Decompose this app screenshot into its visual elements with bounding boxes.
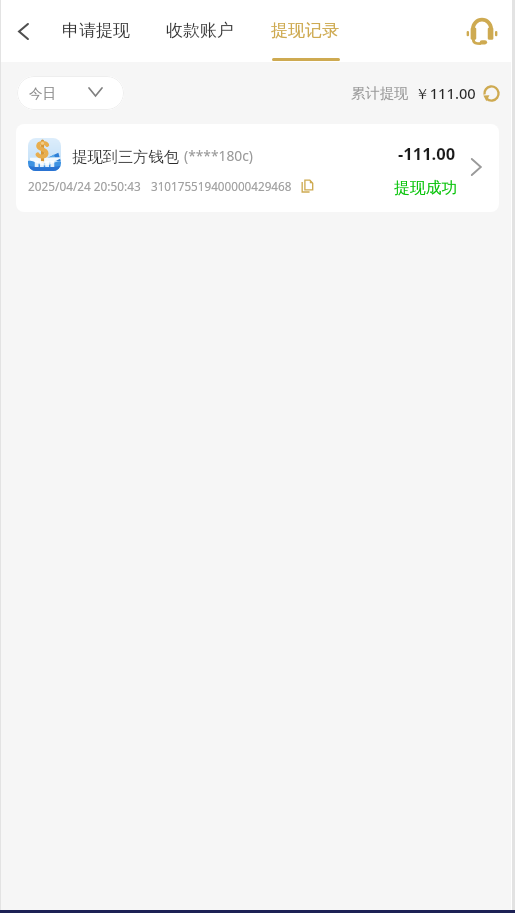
staticText: ￥111.00 xyxy=(415,83,476,103)
button[interactable]: 提现记录 xyxy=(263,0,347,62)
staticText: 提现到三方钱包 xyxy=(72,147,180,166)
staticText: 今日 xyxy=(29,85,56,102)
staticText: 收款账户 xyxy=(166,20,234,41)
staticText: 提现成功 xyxy=(394,178,458,198)
staticText: 申请提现 xyxy=(62,20,130,41)
button[interactable]: 申请提现 xyxy=(54,0,138,62)
staticText: 提现记录 xyxy=(271,20,339,41)
staticText: -111.00 xyxy=(398,142,456,164)
button[interactable]: Customer service xyxy=(462,11,502,51)
staticText: 2025/04/24 20:50:43 xyxy=(28,178,141,194)
button[interactable]: 今日 xyxy=(17,76,124,110)
staticText: 累计提现 xyxy=(351,84,409,102)
button[interactable]: Refresh xyxy=(479,81,503,105)
staticText: 310175519400000429468 xyxy=(151,178,292,194)
button[interactable]: 提现到三方钱包 xyxy=(16,124,499,212)
button[interactable]: 收款账户 xyxy=(158,0,242,62)
button[interactable]: Back xyxy=(3,11,43,51)
button[interactable]: Copy xyxy=(299,178,315,194)
staticText: (****180c) xyxy=(184,146,253,165)
